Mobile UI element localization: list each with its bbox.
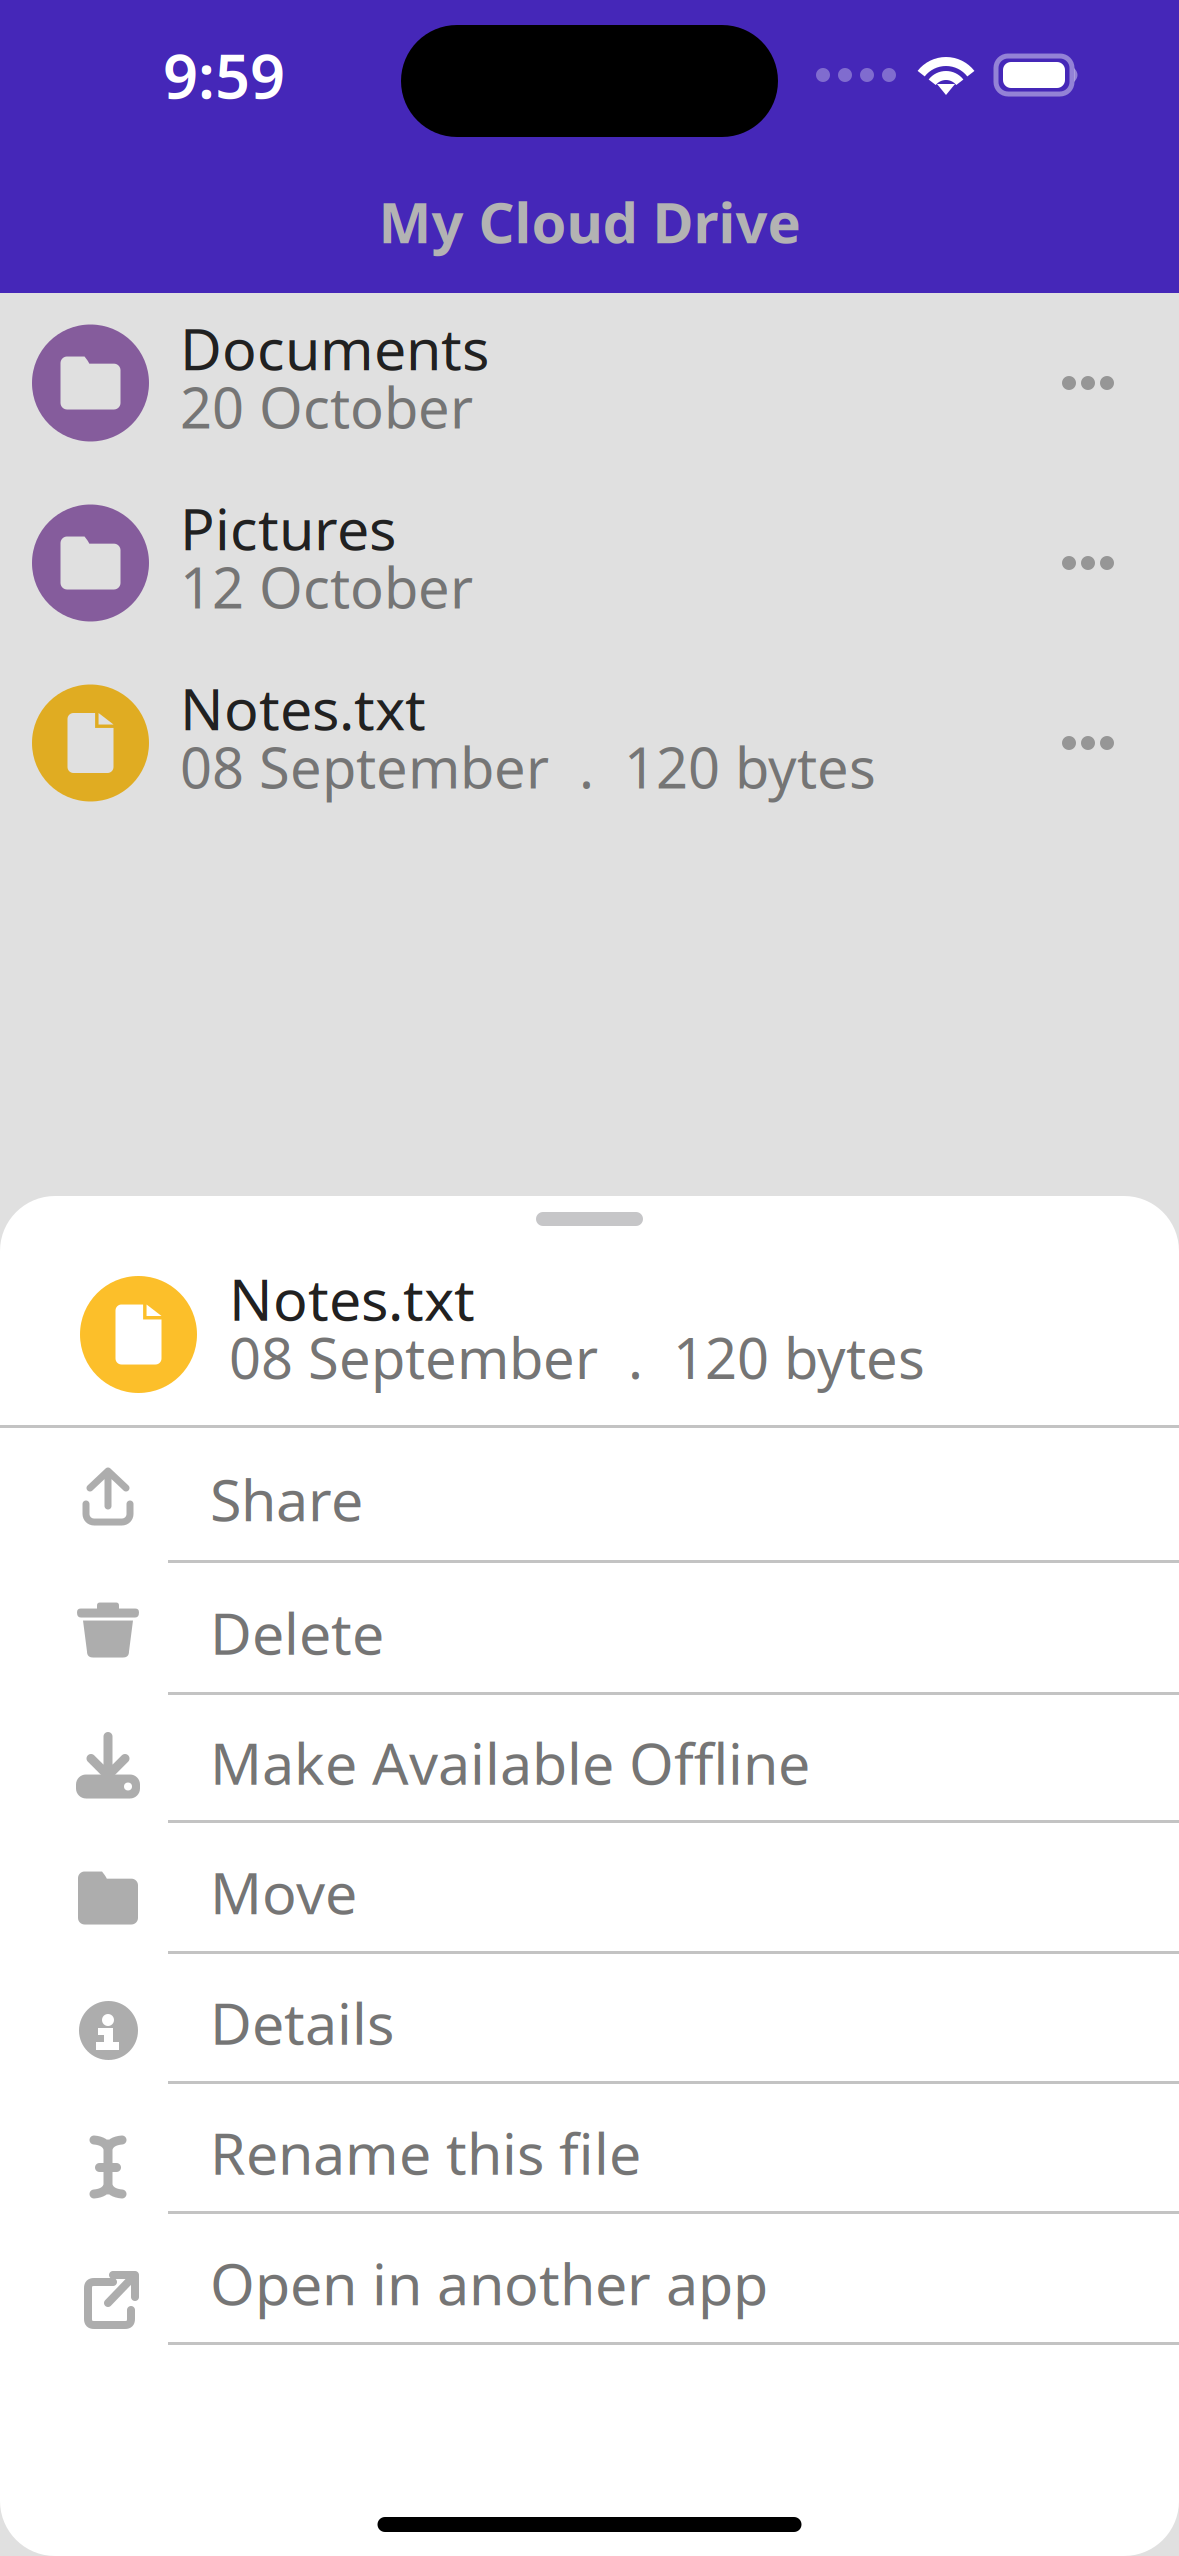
staticText: Documents xyxy=(180,310,489,386)
button[interactable]: Move xyxy=(0,1823,1179,1954)
staticText: Pictures xyxy=(180,490,396,566)
button[interactable]: Pictures xyxy=(0,473,1179,653)
staticText: 20 October xyxy=(180,370,473,444)
staticText: Move xyxy=(210,1854,357,1930)
staticText: 08 September . 120 bytes xyxy=(229,1320,925,1394)
staticText: My Cloud Drive xyxy=(378,184,800,259)
staticText: 12 October xyxy=(180,550,473,624)
staticText: Open in another app xyxy=(210,2245,768,2321)
button[interactable]: Make Available Offline xyxy=(0,1695,1179,1823)
button[interactable]: Details xyxy=(0,1954,1179,2084)
staticText: 08 September . 120 bytes xyxy=(180,730,876,804)
button[interactable]: More options xyxy=(1033,508,1179,618)
staticText: 9:59 xyxy=(163,34,285,116)
button[interactable]: Share xyxy=(0,1428,1179,1563)
button[interactable]: More options xyxy=(1033,328,1179,438)
staticText: Make Available Offline xyxy=(210,1724,810,1800)
button[interactable]: More options xyxy=(1033,688,1179,798)
staticText: Rename this file xyxy=(210,2114,641,2190)
button[interactable]: Rename this file xyxy=(0,2084,1179,2214)
staticText: Details xyxy=(210,1984,394,2060)
staticText: Share xyxy=(210,1461,363,1537)
button[interactable]: Documents xyxy=(0,293,1179,473)
staticText: Notes.txt xyxy=(180,670,426,746)
staticText: Delete xyxy=(210,1594,384,1670)
button[interactable]: Delete xyxy=(0,1563,1179,1695)
button[interactable]: Notes.txt xyxy=(0,653,1179,833)
button[interactable]: Open in another app xyxy=(0,2214,1179,2345)
staticText: Notes.txt xyxy=(229,1260,475,1336)
